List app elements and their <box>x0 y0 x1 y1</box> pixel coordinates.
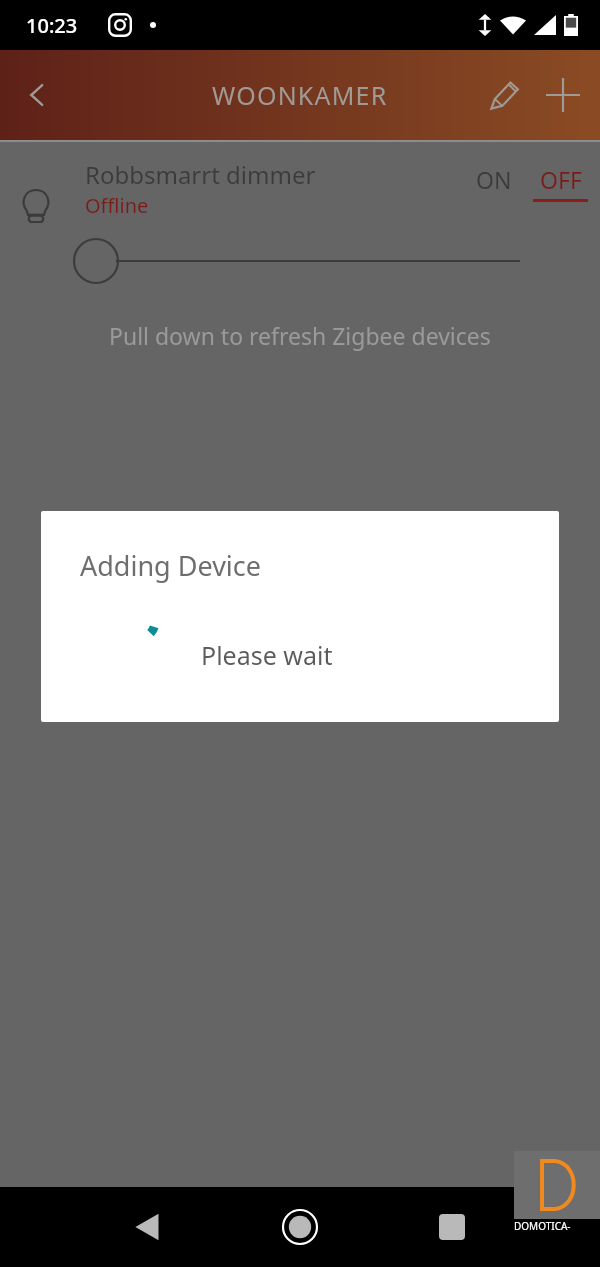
staticText: WOONKAMER <box>212 78 388 112</box>
staticText: Offline <box>85 192 149 219</box>
button[interactable]: Recent apps <box>424 1199 480 1255</box>
staticText: OFF <box>540 164 582 195</box>
staticText: 10:23 <box>26 12 78 39</box>
staticText: Pull down to refresh Zigbee devices <box>109 320 491 351</box>
button[interactable]: Home <box>270 1197 330 1257</box>
button[interactable]: Robbsmarrt dimmer <box>0 142 600 292</box>
button[interactable]: Back <box>120 1199 176 1255</box>
button[interactable]: ON <box>476 164 512 195</box>
staticText: Adding Device <box>80 547 262 584</box>
staticText: Please wait <box>201 638 333 672</box>
staticText: Robbsmarrt dimmer <box>85 158 316 191</box>
staticText: ON <box>476 164 512 195</box>
button[interactable]: Edit <box>476 66 534 124</box>
staticText: DOMOTICA-BLOG.NL <box>514 1219 600 1231</box>
button[interactable]: Brightness slider <box>74 238 600 284</box>
button[interactable]: Back <box>10 68 64 122</box>
button[interactable]: OFF <box>533 164 588 202</box>
button[interactable]: Add device <box>534 66 592 124</box>
